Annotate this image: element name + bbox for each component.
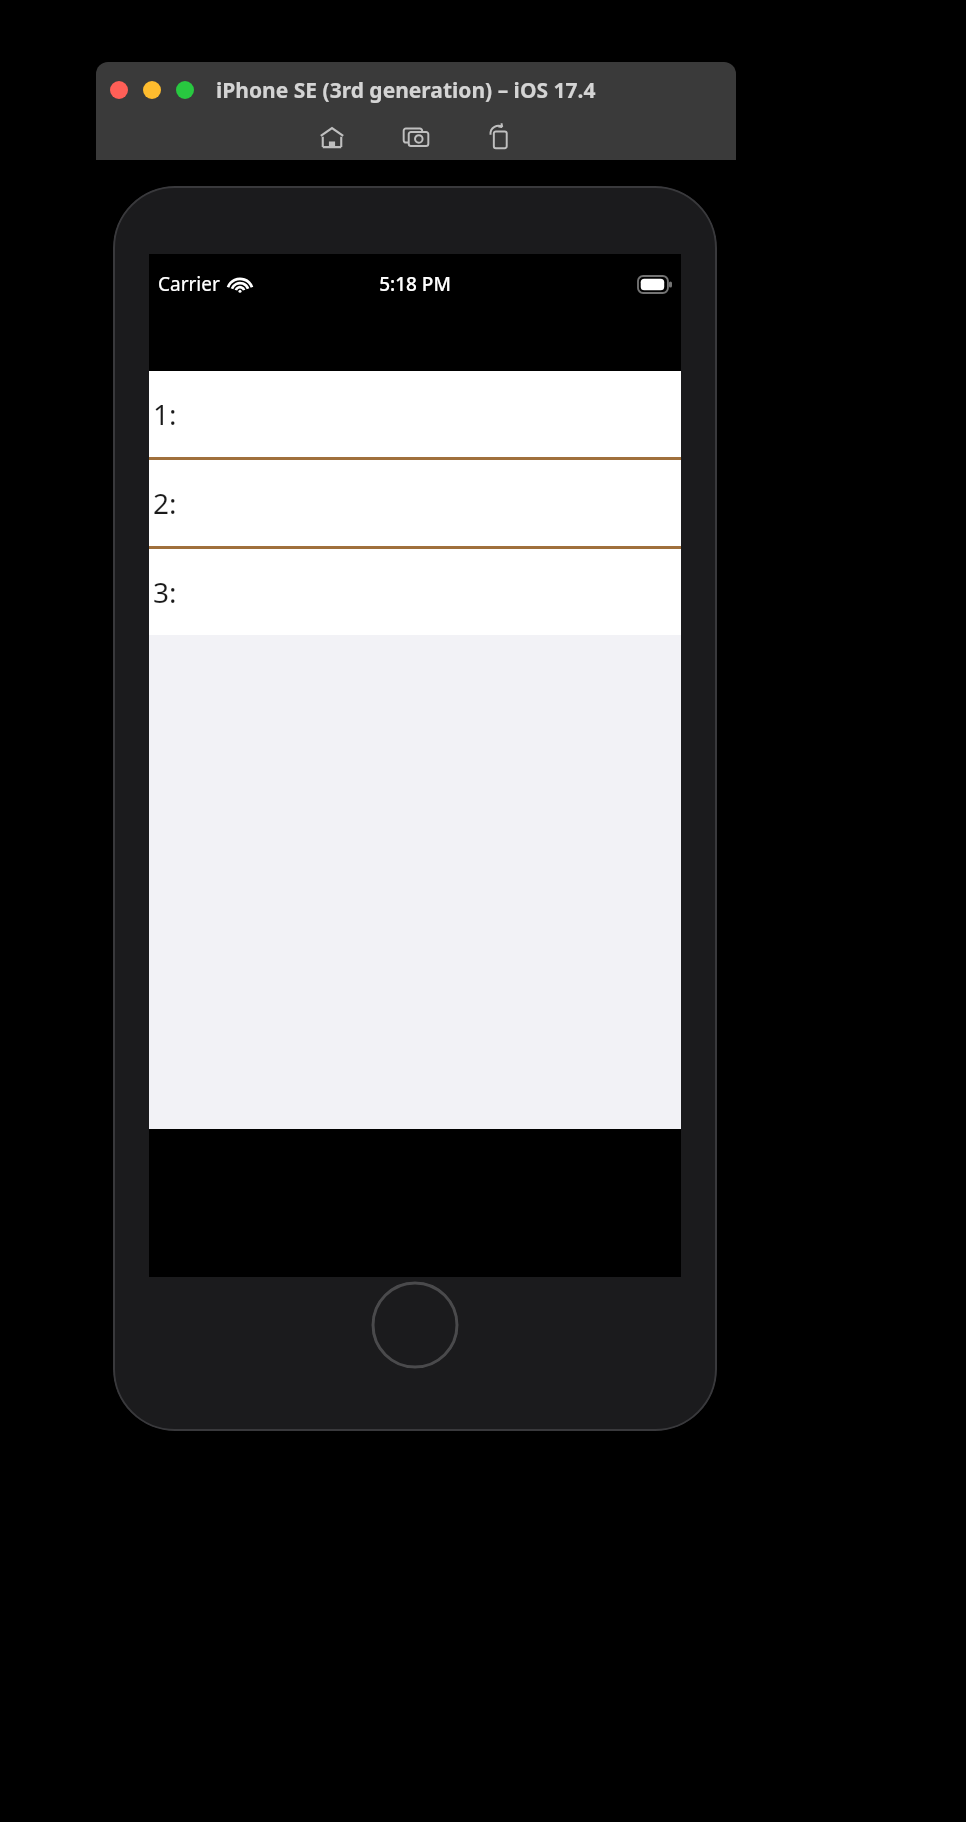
staticText: 1: xyxy=(153,395,177,433)
staticText: iPhone SE (3rd generation) – iOS 17.4 xyxy=(216,76,596,105)
button[interactable]: Rotate xyxy=(480,117,520,157)
button[interactable]: 3: xyxy=(149,549,681,635)
staticText: Carrier xyxy=(158,271,220,297)
button[interactable]: Zoom xyxy=(176,81,194,99)
button[interactable]: Home xyxy=(371,1281,459,1369)
button[interactable]: Minimize xyxy=(143,81,161,99)
staticText: 3: xyxy=(153,573,177,611)
button[interactable]: Close xyxy=(110,81,128,99)
button[interactable]: Screenshot xyxy=(396,117,436,157)
button[interactable]: 2: xyxy=(149,460,681,546)
staticText: 5:18 PM xyxy=(379,271,451,297)
button[interactable]: Home xyxy=(312,117,352,157)
staticText: 2: xyxy=(153,484,177,522)
button[interactable]: 1: xyxy=(149,371,681,457)
